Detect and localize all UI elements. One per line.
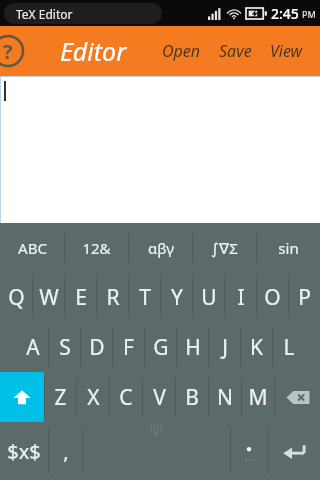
staticText: Save [219,40,252,62]
button[interactable]: T [129,272,160,322]
staticText: $x$ [7,438,41,465]
button[interactable]: ABC [0,224,64,272]
staticText: , [63,438,69,465]
staticText: U [201,283,217,312]
button[interactable]: 12& [65,224,128,272]
staticText: B [185,383,199,412]
staticText: E [75,283,87,312]
button[interactable]: I [225,272,256,322]
staticText: X [87,383,100,412]
staticText: sin [278,238,299,258]
staticText: I [237,283,245,312]
button[interactable]: P [289,272,320,322]
button[interactable]: B [176,372,208,422]
staticText: PM [302,8,316,20]
staticText: M [248,383,268,412]
button[interactable]: Z [45,372,76,422]
button[interactable]: ∫∇Σ [193,224,256,272]
button[interactable]: O [257,272,288,322]
button[interactable]: Enter [268,422,320,480]
button[interactable]: Open [153,34,210,68]
button[interactable]: X [77,372,109,422]
button[interactable]: C [110,372,142,422]
button[interactable]: Backspace [275,372,320,422]
staticText: 2:45 [271,4,299,23]
button[interactable]: E [65,272,96,322]
button[interactable]: TeX Editor [4,3,162,24]
staticText: S [59,333,71,362]
staticText: R [106,283,120,312]
button[interactable]: F [113,322,144,372]
staticText: ∫∇Σ [211,238,238,258]
button[interactable]: Y [161,272,192,322]
button[interactable]: R [97,272,128,322]
staticText: V [153,383,166,412]
button[interactable]: V [143,372,175,422]
staticText: View [270,40,303,62]
staticText: G [153,333,169,362]
staticText: Editor [60,34,127,68]
button[interactable]: K [241,322,272,372]
button[interactable]: U [193,272,224,322]
staticText: P [298,283,311,312]
staticText: ABC [18,238,47,258]
button[interactable]: A [17,322,48,372]
staticText: J [222,333,228,362]
staticText: 12& [82,238,111,258]
staticText: A [26,333,40,362]
button[interactable]: Q [0,272,32,322]
staticText: T [139,283,151,312]
button[interactable]: View [261,34,312,68]
staticText: Q [8,283,25,312]
button[interactable]: αβγ [129,224,192,272]
staticText: L [283,333,295,362]
staticText: Z [54,383,67,412]
button[interactable]: N [209,372,241,422]
staticText: TeX Editor [16,6,73,22]
staticText: Open [162,40,201,62]
staticText: ? [3,38,13,65]
button[interactable]: Shift [0,372,44,422]
staticText: C [119,383,133,412]
button[interactable]: M [242,372,274,422]
button[interactable]: D [81,322,112,372]
button[interactable]: sin [257,224,320,272]
staticText: Y [171,283,183,312]
staticText: F [123,333,134,362]
staticText: H [185,333,201,362]
staticText: αβγ [148,238,174,258]
button[interactable] [1,77,320,223]
button[interactable]: Save [210,34,261,68]
button[interactable]: G [145,322,176,372]
button[interactable]: J [209,322,240,372]
button[interactable]: L [273,322,304,372]
button[interactable]: W [33,272,64,322]
staticText: D [89,333,105,362]
staticText: W [39,283,59,312]
button[interactable]: Help [0,34,25,68]
staticText: O [264,283,281,312]
staticText: K [250,333,263,362]
button[interactable]: Period [231,422,267,480]
button[interactable]: H [177,322,208,372]
button[interactable]: , [49,422,82,480]
button[interactable]: S [49,322,80,372]
staticText: N [217,383,233,412]
button[interactable]: $x$ [0,422,48,480]
